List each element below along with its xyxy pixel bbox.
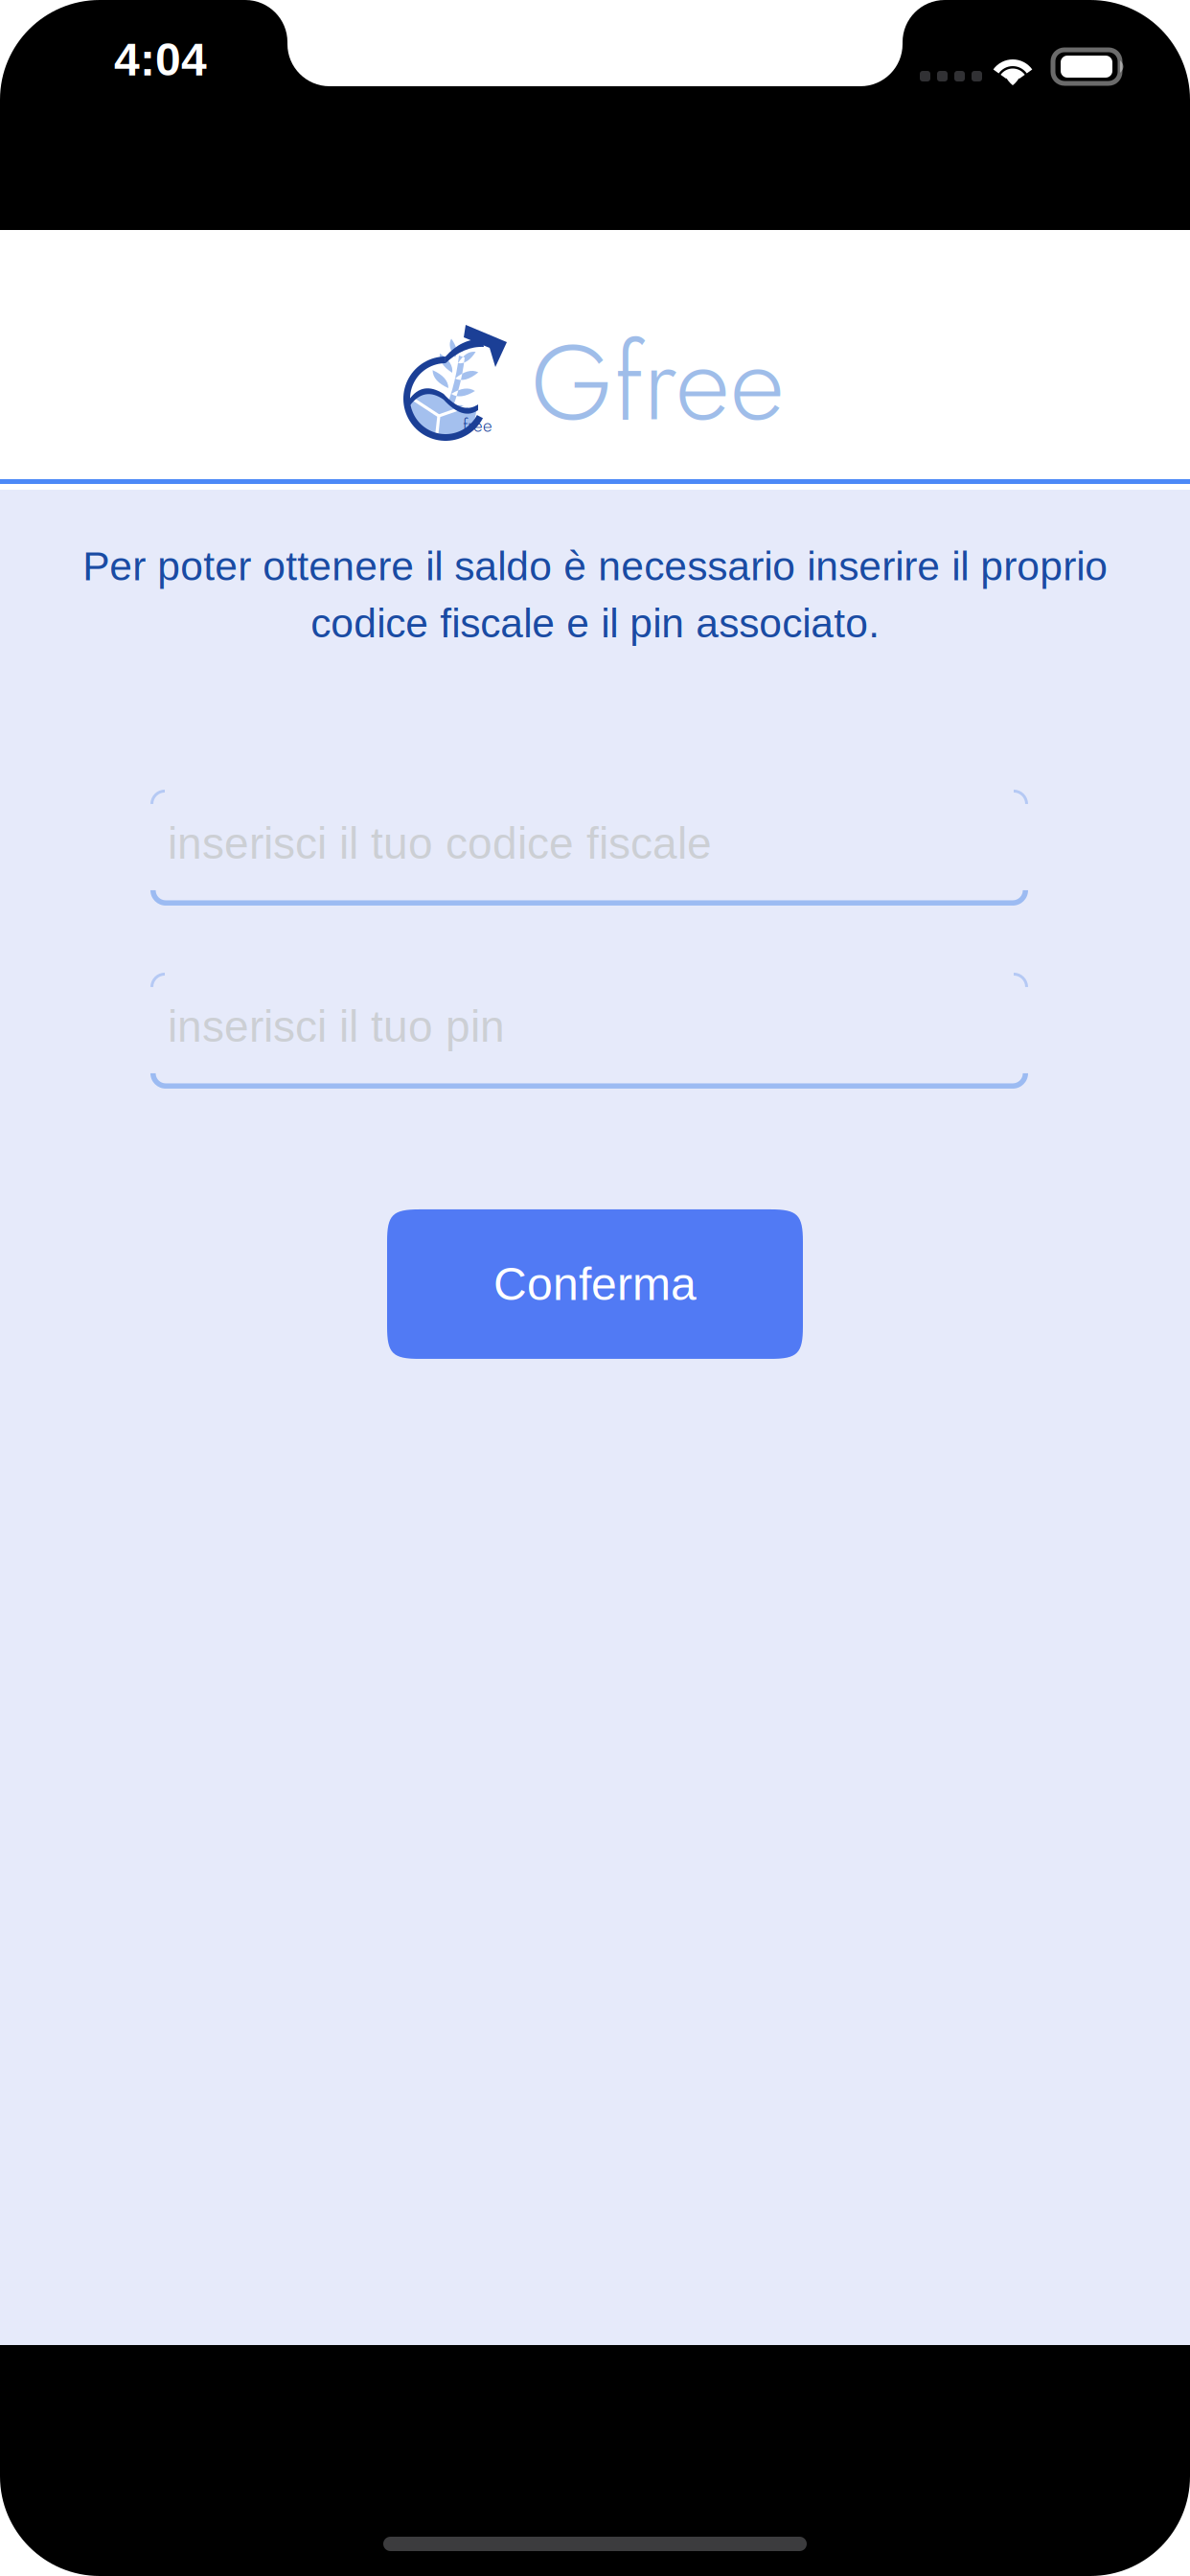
button[interactable]: inserisci il tuo pin: [150, 973, 1028, 1089]
staticText: Gfree: [531, 306, 785, 459]
staticText: Conferma: [493, 1258, 697, 1310]
staticText: inserisci il tuo codice fiscale: [168, 819, 712, 868]
staticText: Per poter ottenere il saldo è necessario…: [82, 543, 1108, 646]
staticText: free: [463, 413, 492, 438]
staticText: 4:04: [114, 34, 207, 85]
staticText: inserisci il tuo pin: [168, 1002, 505, 1051]
button[interactable]: Conferma: [387, 1209, 803, 1359]
button[interactable]: inserisci il tuo codice fiscale: [150, 790, 1028, 906]
